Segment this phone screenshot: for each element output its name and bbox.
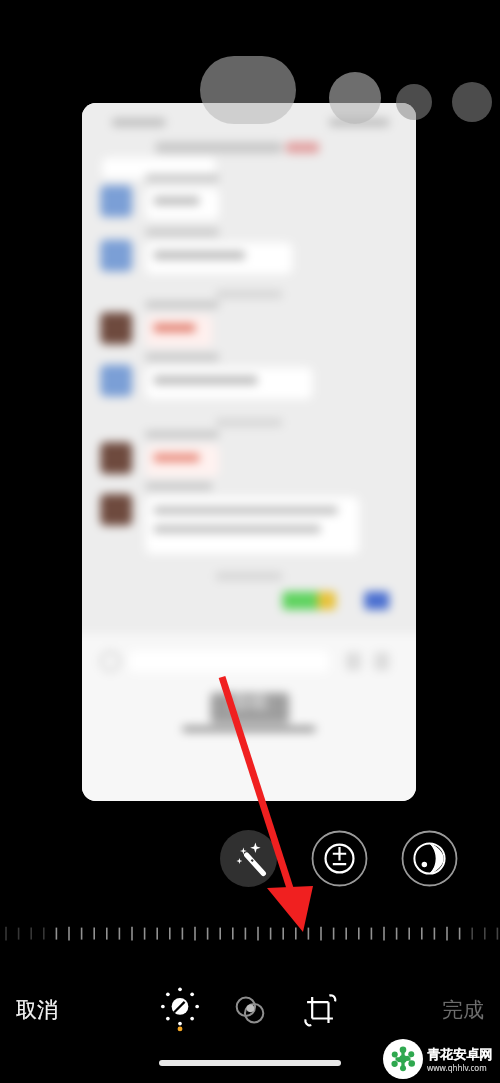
button[interactable]: Adjust (153, 983, 207, 1037)
button[interactable]: Exposure (311, 830, 368, 887)
staticText: 自动 (231, 691, 267, 714)
staticText: 青花安卓网 (427, 1046, 492, 1062)
button[interactable]: Crop and rotate (293, 983, 347, 1037)
staticText: 完成 (442, 997, 484, 1023)
staticText: 取消 (16, 997, 58, 1023)
button[interactable]: Contrast (401, 830, 458, 887)
button[interactable]: 完成 (432, 989, 494, 1031)
staticText: www.qhhlv.com (427, 1062, 487, 1073)
button[interactable]: 取消 (6, 989, 68, 1031)
button[interactable]: Adjustment slider (0, 918, 500, 948)
button[interactable]: Auto enhance (220, 830, 277, 887)
button[interactable]: Filters (223, 983, 277, 1037)
